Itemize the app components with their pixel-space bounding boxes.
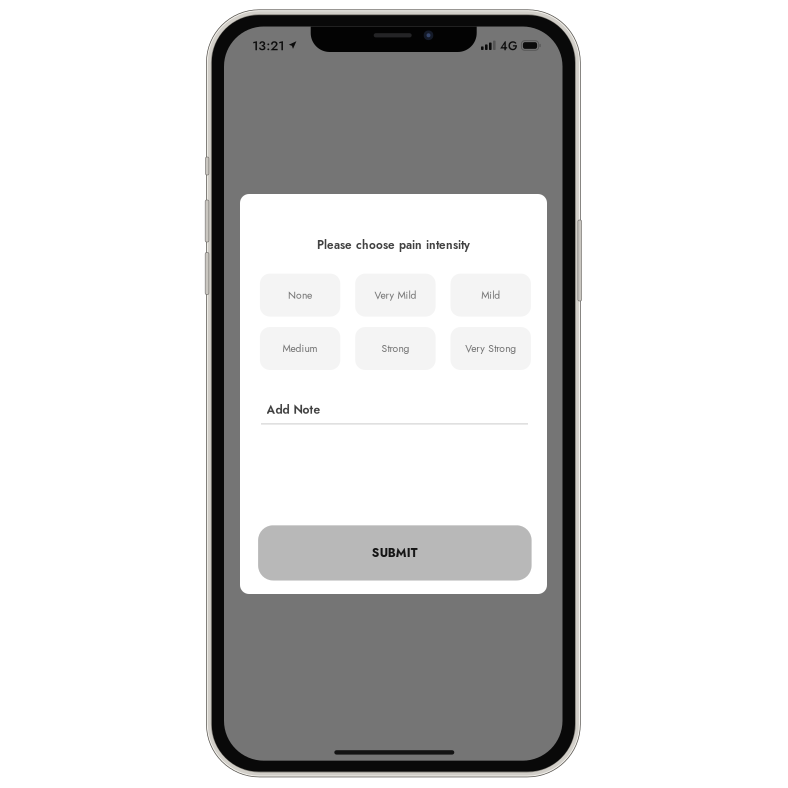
staticText: Please choose pain intensity	[317, 236, 470, 253]
button[interactable]: Mild	[450, 274, 531, 317]
button[interactable]: Strong	[355, 327, 436, 370]
button[interactable]: Very Mild	[355, 274, 436, 317]
staticText: Medium	[283, 341, 318, 356]
button[interactable]: Very Strong	[450, 327, 531, 370]
staticText: None	[288, 288, 312, 302]
button[interactable]: Medium	[260, 327, 340, 370]
button[interactable]: SUBMIT	[258, 525, 532, 580]
staticText: SUBMIT	[372, 544, 418, 561]
staticText: Add Note	[267, 401, 321, 418]
staticText: Strong	[381, 341, 409, 356]
staticText: Mild	[481, 288, 500, 302]
staticText: 13:21	[252, 36, 284, 55]
staticText: Very Strong	[465, 341, 516, 356]
staticText: Very Mild	[374, 288, 416, 302]
button[interactable]: None	[260, 274, 340, 317]
staticText: 4G	[500, 37, 517, 55]
